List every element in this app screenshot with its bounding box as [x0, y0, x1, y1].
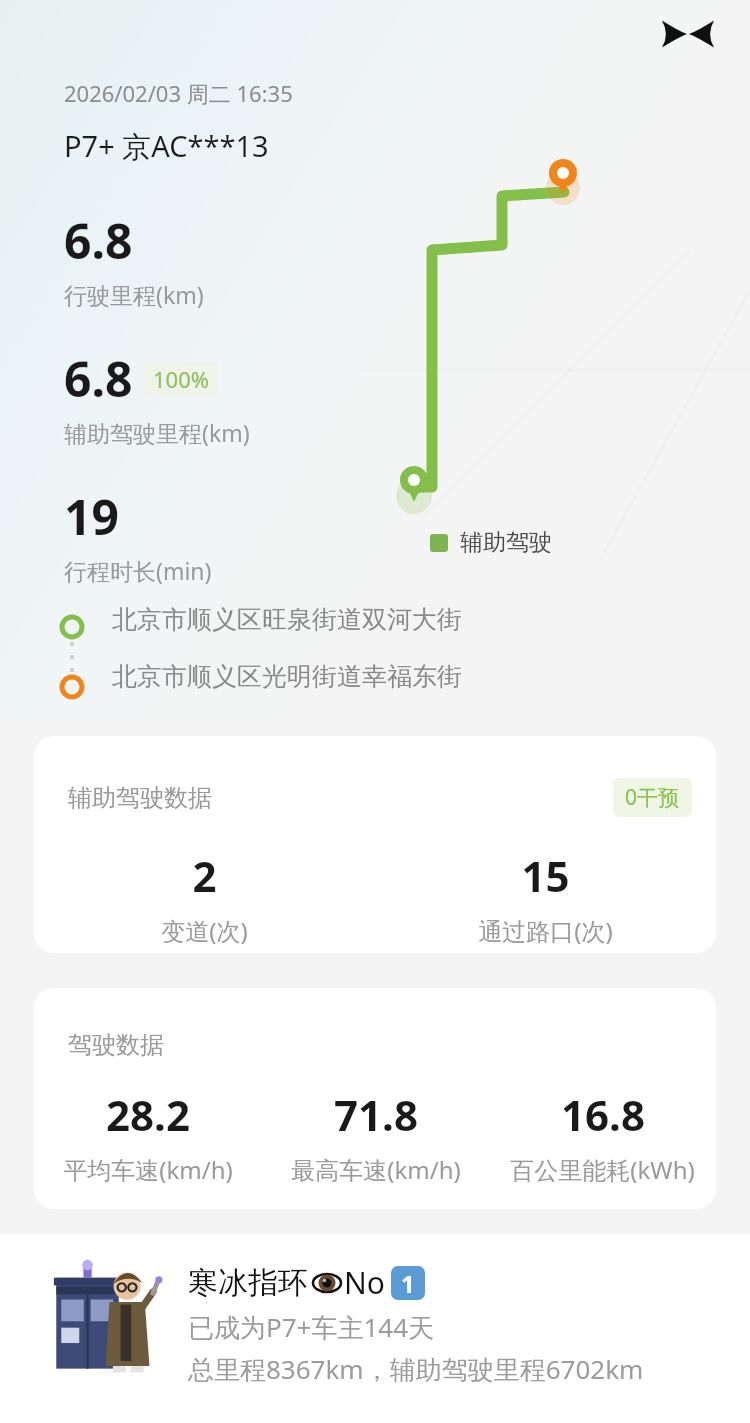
button[interactable]: 16.8 [489, 1086, 716, 1186]
staticText: 辅助驾驶 [460, 528, 552, 557]
staticText: 辅助驾驶数据 [68, 783, 212, 813]
staticText: 71.8 [334, 1086, 418, 1143]
button[interactable]: 北京市顺义区旺泉街道双河大街 [112, 604, 462, 635]
staticText: 变道(次) [161, 914, 248, 947]
staticText: 0干预 [625, 783, 680, 812]
staticText: 15 [521, 847, 570, 904]
button[interactable]: 71.8 [262, 1086, 489, 1186]
staticText: 最高车速(km/h) [291, 1153, 461, 1186]
staticText: 驾驶数据 [68, 1030, 164, 1060]
staticText: 总里程8367km，辅助驾驶里程6702km [188, 1351, 644, 1387]
staticText: 28.2 [106, 1086, 190, 1143]
button[interactable]: 辅助驾驶 [430, 528, 552, 557]
button[interactable]: User avatar [0, 1234, 750, 1423]
staticText: 北京市顺义区旺泉街道双河大街 [112, 604, 462, 635]
staticText: 行驶里程(km) [64, 279, 204, 310]
staticText: P7+ 京AC***13 [64, 126, 269, 166]
button[interactable]: 驾驶数据 [34, 988, 716, 1209]
button[interactable]: 2 [34, 847, 375, 947]
staticText: 2 [192, 847, 217, 904]
staticText: 16.8 [561, 1086, 645, 1143]
button[interactable]: 辅助驾驶数据 [34, 736, 716, 953]
button[interactable]: 北京市顺义区光明街道幸福东街 [112, 661, 462, 692]
button[interactable]: 15 [375, 847, 716, 947]
staticText: 辅助驾驶里程(km) [64, 417, 250, 448]
staticText: 已成为P7+车主144天 [188, 1309, 435, 1345]
staticText: 北京市顺义区光明街道幸福东街 [112, 661, 462, 692]
staticText: 寒冰指环 [188, 1264, 308, 1302]
button[interactable]: 28.2 [34, 1086, 262, 1186]
staticText: 19 [64, 484, 119, 549]
staticText: 1 [401, 1267, 415, 1300]
staticText: 6.8 [64, 208, 133, 273]
staticText: 6.8 [64, 346, 133, 411]
staticText: 100% [153, 364, 210, 394]
staticText: 平均车速(km/h) [63, 1153, 233, 1186]
staticText: No [344, 1262, 385, 1303]
staticText: 百公里能耗(kWh) [510, 1153, 695, 1186]
staticText: 通过路口(次) [478, 914, 613, 947]
button[interactable]: XPeng logo [662, 17, 714, 51]
staticText: 行程时长(min) [64, 555, 212, 586]
other: User avatar [48, 1256, 166, 1384]
staticText: 2026/02/03 周二 16:35 [64, 78, 293, 108]
